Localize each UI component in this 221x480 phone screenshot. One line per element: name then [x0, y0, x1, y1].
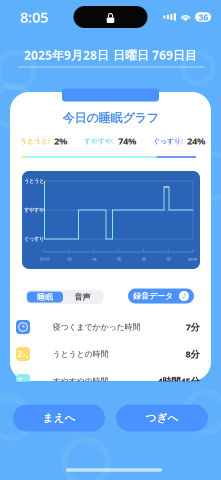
staticText: z: [23, 379, 26, 386]
button[interactable]: 睡眠: [27, 291, 63, 302]
staticText: Z: [18, 376, 23, 386]
staticText: 8分: [185, 348, 199, 360]
staticText: すやすやの時間: [52, 376, 108, 386]
staticText: 7分: [185, 321, 199, 333]
staticText: 08:04: [187, 256, 196, 262]
button[interactable]: つぎへ: [116, 404, 208, 431]
staticText: すやすや:: [84, 137, 114, 145]
staticText: 03: [67, 256, 71, 262]
staticText: z: [26, 354, 28, 359]
staticText: z: [26, 381, 28, 386]
staticText: うとうと: [24, 178, 44, 184]
staticText: まえへ: [42, 411, 75, 424]
staticText: 74%: [118, 135, 136, 147]
staticText: 01:31: [40, 256, 49, 262]
staticText: 睡眠: [37, 292, 53, 302]
button[interactable]: うとうとの時間: [52, 341, 199, 367]
staticText: 06: [142, 256, 146, 262]
button[interactable]: 音声: [63, 291, 102, 302]
button[interactable]: まえへ: [13, 404, 105, 431]
staticText: 録音データ: [133, 291, 173, 301]
staticText: Z: [18, 349, 23, 359]
staticText: 今日の睡眠グラフ: [62, 111, 158, 125]
staticText: 07: [167, 256, 171, 262]
button[interactable]: 寝つくまでかかった時間: [52, 314, 199, 340]
staticText: ぐっすり:: [153, 137, 183, 145]
staticText: 05: [117, 256, 121, 262]
staticText: 寝つくまでかかった時間: [52, 322, 140, 332]
button[interactable]: すやすやの時間: [52, 368, 199, 394]
staticText: 04: [92, 256, 96, 262]
staticText: うとうと:: [20, 137, 50, 145]
staticText: z: [23, 352, 26, 359]
staticText: 8:05: [20, 7, 48, 27]
staticText: 4時間45分: [157, 375, 199, 387]
staticText: 音声: [74, 292, 90, 302]
button[interactable]: 録音データ: [128, 288, 194, 303]
staticText: ♪: [182, 292, 186, 300]
staticText: ぐっすり: [24, 236, 44, 242]
staticText: 2025年9月28日 日曜日 769日目: [24, 47, 197, 63]
staticText: 24%: [187, 135, 205, 147]
staticText: すやすや: [24, 207, 44, 213]
staticText: 36: [198, 11, 208, 23]
staticText: うとうとの時間: [52, 349, 108, 359]
staticText: 2%: [54, 135, 67, 147]
staticText: つぎへ: [145, 411, 178, 424]
